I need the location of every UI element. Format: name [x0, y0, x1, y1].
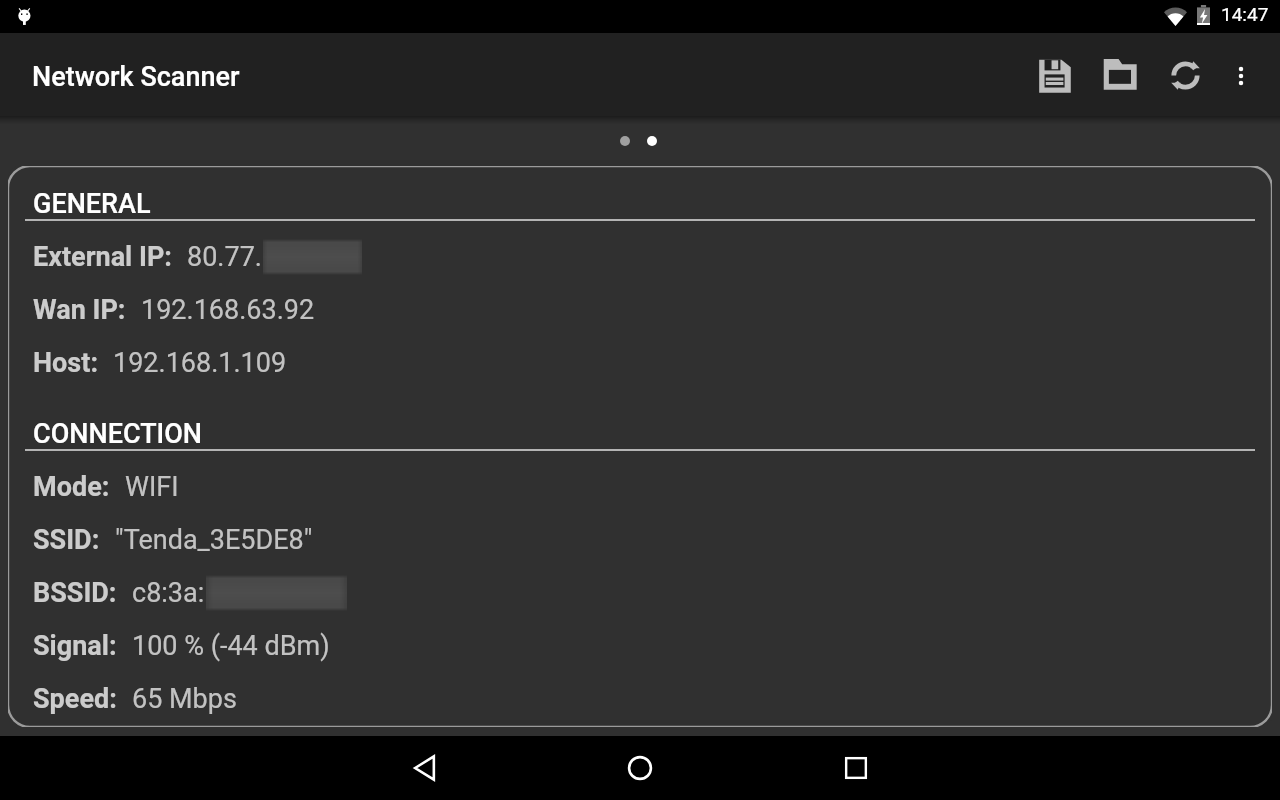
- staticText: c8:3a:: [132, 577, 205, 609]
- staticText: Host:: [33, 347, 98, 379]
- staticText: 14:47: [1221, 3, 1269, 25]
- staticText: Mode:: [33, 471, 110, 503]
- staticText: "Tenda_3E5DE8": [115, 524, 313, 556]
- staticText: WIFI: [125, 471, 179, 503]
- staticText: 192.168.1.109: [113, 347, 287, 379]
- staticText: 192.168.63.92: [141, 294, 315, 326]
- button[interactable]: Refresh: [1153, 33, 1217, 116]
- button[interactable]: Back: [361, 736, 489, 800]
- button[interactable]: Home: [576, 736, 704, 800]
- staticText: 100 % (-44 dBm): [132, 630, 330, 662]
- staticText: CONNECTION: [33, 418, 202, 450]
- button[interactable]: Recent apps: [792, 736, 920, 800]
- button[interactable]: More options: [1209, 33, 1273, 116]
- staticText: Signal:: [33, 630, 117, 662]
- button[interactable]: Open folder: [1088, 33, 1152, 116]
- staticText: Speed:: [33, 683, 117, 715]
- button[interactable]: Save: [1022, 33, 1086, 116]
- staticText: SSID:: [33, 524, 100, 556]
- staticText: Network Scanner: [32, 61, 240, 93]
- staticText: 80.77.: [187, 241, 262, 273]
- staticText: 65 Mbps: [132, 683, 237, 715]
- staticText: GENERAL: [33, 188, 151, 220]
- staticText: BSSID:: [33, 577, 117, 609]
- staticText: External IP:: [33, 241, 172, 273]
- staticText: Wan IP:: [33, 294, 126, 326]
